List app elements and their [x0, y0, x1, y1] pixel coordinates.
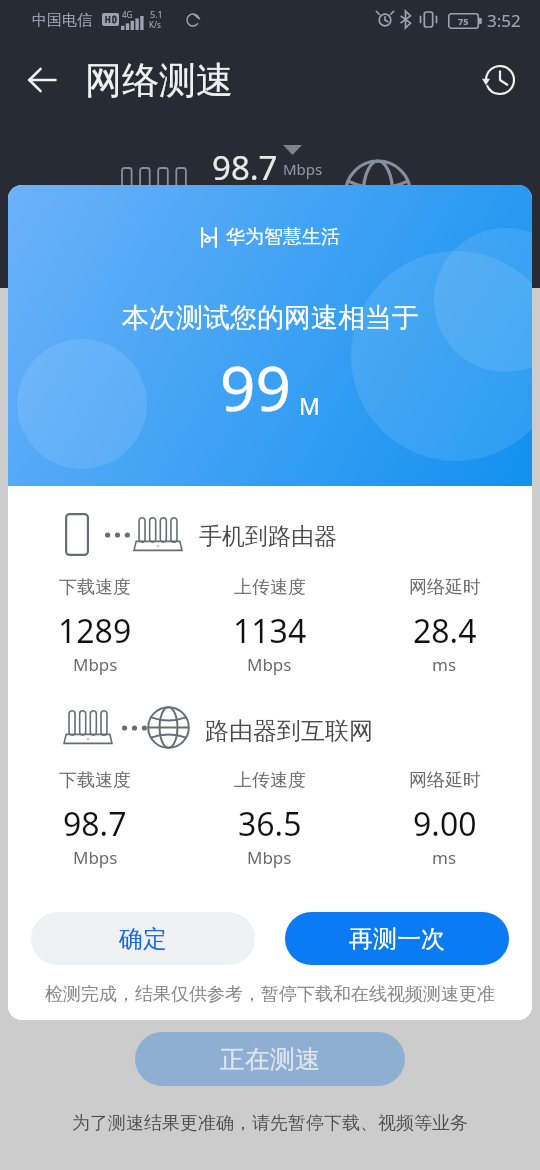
staticText: 3:52	[487, 9, 521, 32]
staticText: M	[299, 390, 320, 421]
staticText: K/s	[149, 19, 161, 30]
button[interactable]: Back	[20, 58, 64, 102]
staticText: 确定	[119, 924, 167, 954]
staticText: 上传速度	[234, 769, 306, 792]
staticText: Mbps	[247, 846, 292, 869]
staticText: 网络延时	[409, 769, 481, 792]
staticText: 再测一次	[349, 924, 445, 954]
staticText: 本次测试您的网速相当于	[122, 301, 419, 335]
button[interactable]: 再测一次	[285, 912, 509, 965]
staticText: 36.5	[238, 802, 302, 846]
staticText: 28.4	[413, 609, 477, 653]
staticText: Mbps	[73, 653, 118, 676]
staticText: 5.1	[150, 8, 163, 20]
button[interactable]: 确定	[31, 912, 255, 965]
button[interactable]: 正在测速	[135, 1032, 405, 1086]
staticText: 99	[220, 345, 291, 429]
staticText: 98.7	[63, 802, 127, 846]
staticText: 下载速度	[59, 576, 131, 599]
staticText: Mbps	[283, 159, 323, 179]
staticText: 路由器到互联网	[205, 716, 373, 746]
staticText: 华为智慧生活	[226, 225, 340, 249]
staticText: ms	[432, 653, 457, 676]
staticText: 下载速度	[59, 769, 131, 792]
button[interactable]: History	[476, 56, 524, 104]
staticText: 正在测速	[220, 1044, 320, 1075]
staticText: 9.00	[413, 802, 477, 846]
staticText: 网络延时	[409, 576, 481, 599]
staticText: 98.7	[212, 145, 278, 190]
staticText: 检测完成，结果仅供参考，暂停下载和在线视频测速更准	[8, 983, 532, 1006]
staticText: 4G	[122, 9, 133, 20]
staticText: Mbps	[247, 653, 292, 676]
staticText: 1134	[233, 609, 307, 653]
staticText: 中国电信	[32, 11, 92, 30]
staticText: 上传速度	[234, 576, 306, 599]
staticText: 1289	[58, 609, 132, 653]
staticText: ms	[432, 846, 457, 869]
staticText: 为了测速结果更准确，请先暂停下载、视频等业务	[0, 1112, 540, 1135]
staticText: 75	[458, 15, 469, 27]
staticText: 手机到路由器	[199, 522, 337, 551]
staticText: 网络测速	[85, 57, 233, 104]
staticText: Mbps	[73, 846, 118, 869]
